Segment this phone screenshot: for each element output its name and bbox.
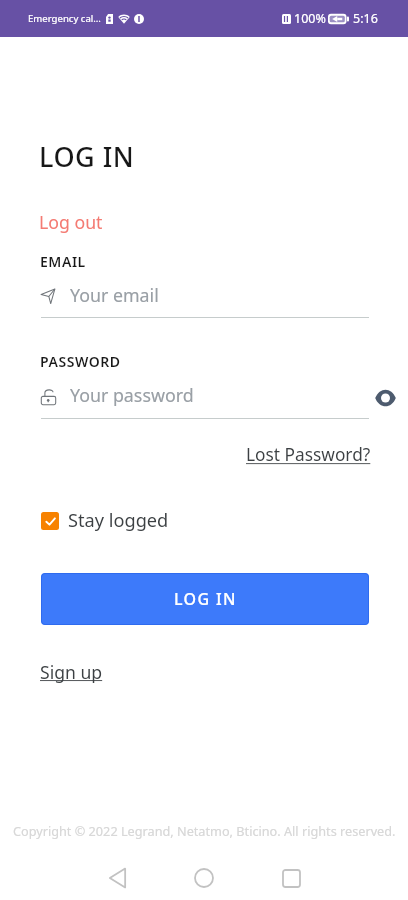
button[interactable]: Back	[93, 854, 141, 900]
button[interactable]: Show password	[371, 384, 399, 412]
staticText: 5:16	[353, 10, 378, 27]
staticText: 100%	[294, 10, 326, 27]
staticText: Sign up	[40, 660, 103, 684]
staticText: EMAIL	[40, 252, 86, 271]
button[interactable]: Lost Password?	[238, 439, 371, 471]
staticText: Your email	[70, 283, 159, 307]
button[interactable]: Recents	[267, 854, 315, 900]
button[interactable]: Log out	[39, 210, 103, 234]
staticText: Stay logged	[68, 508, 169, 533]
button[interactable]: Stay logged	[36, 504, 181, 538]
button[interactable]: LOG IN	[41, 573, 369, 625]
staticText: Your password	[70, 383, 194, 407]
staticText: Emergency cal…	[28, 12, 101, 25]
button[interactable]: Sign up	[40, 660, 103, 684]
staticText: Copyright © 2022 Legrand, Netatmo, Btici…	[13, 822, 396, 839]
staticText: LOG IN	[39, 138, 135, 175]
staticText: LOG IN	[174, 588, 237, 610]
button[interactable]: Home	[180, 854, 228, 900]
staticText: PASSWORD	[40, 352, 121, 371]
staticText: Log out	[39, 210, 103, 234]
staticText: Lost Password?	[246, 443, 371, 467]
